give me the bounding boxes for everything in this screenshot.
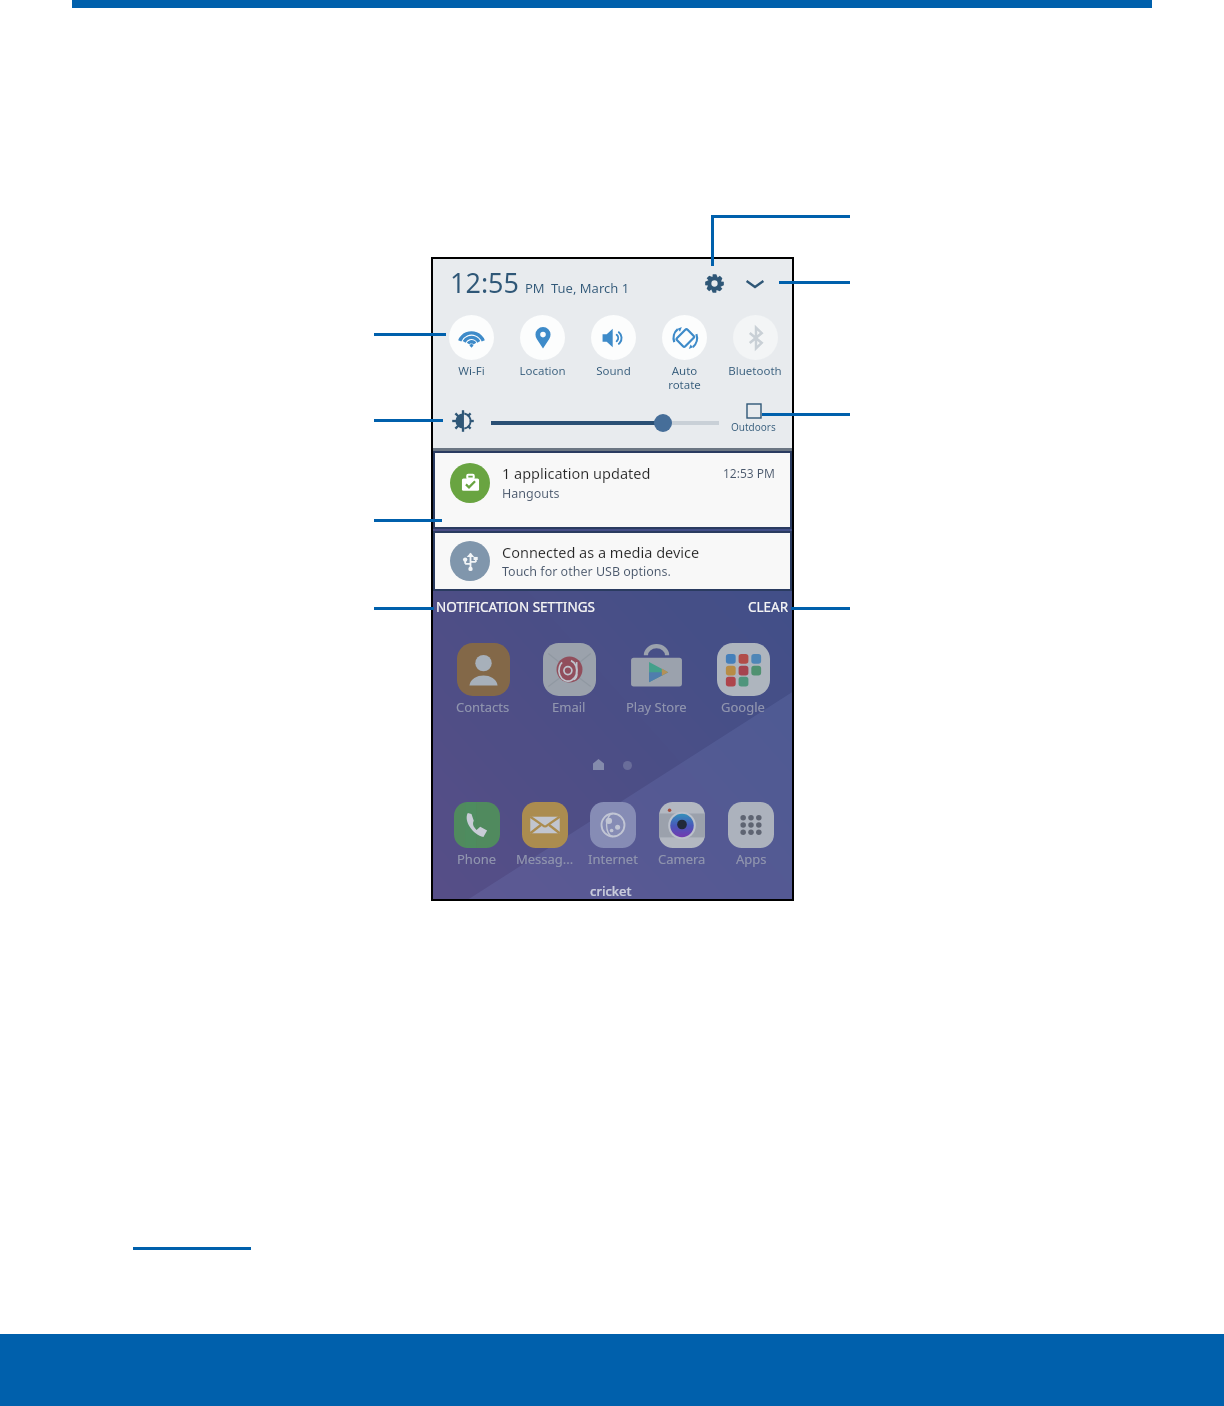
button[interactable]: Contacts (450, 643, 516, 716)
button[interactable]: Wi-Fi (437, 315, 505, 379)
button[interactable]: Email (536, 643, 602, 716)
button[interactable]: Outdoors (730, 404, 777, 434)
button[interactable]: Settings (701, 270, 727, 296)
button[interactable]: Connected as a media device (435, 533, 790, 589)
button[interactable]: Play Store (623, 643, 689, 716)
staticText: Bluetooth (728, 363, 782, 379)
button[interactable]: Sound (579, 315, 647, 379)
button[interactable]: Apps (719, 802, 783, 868)
button[interactable]: CLEAR (748, 598, 789, 616)
staticText: 12:53 PM (723, 465, 775, 481)
button[interactable]: Auto rotate (650, 315, 718, 392)
staticText: cricket (590, 882, 632, 900)
button[interactable]: Bluetooth (721, 315, 789, 379)
staticText: Connected as a media device (502, 542, 700, 562)
staticText: NOTIFICATION SETTINGS (436, 598, 595, 616)
button[interactable]: Expand quick settings (742, 270, 768, 296)
staticText: Apps (736, 850, 767, 868)
button[interactable]: NOTIFICATION SETTINGS (436, 598, 595, 616)
staticText: Hangouts (502, 485, 560, 502)
staticText: CLEAR (748, 598, 789, 616)
staticText: Touch for other USB options. (502, 563, 671, 580)
staticText: Outdoors (731, 420, 776, 434)
button[interactable]: Location (508, 315, 576, 379)
staticText: Sound (596, 363, 631, 379)
staticText: Email (552, 698, 586, 716)
button[interactable]: Phone (445, 802, 509, 868)
button[interactable]: Camera (650, 802, 714, 868)
staticText: 12:55 (450, 264, 520, 301)
staticText: Internet (588, 850, 638, 868)
staticText: Play Store (626, 698, 687, 716)
staticText: Tue, March 1 (551, 279, 630, 297)
button[interactable]: Messag... (513, 802, 577, 868)
staticText: Location (519, 363, 566, 379)
button[interactable]: Internet (581, 802, 645, 868)
staticText: Wi-Fi (458, 363, 485, 379)
staticText: Messag... (516, 850, 574, 868)
staticText: Phone (457, 850, 497, 868)
staticText: 1 application updated (502, 463, 651, 483)
button[interactable]: 1 application updated (435, 453, 790, 527)
staticText: Google (721, 698, 765, 716)
staticText: Contacts (456, 698, 510, 716)
button[interactable]: Google (710, 643, 776, 716)
staticText: Auto rotate (668, 363, 701, 392)
staticText: Camera (658, 850, 706, 868)
staticText: PM (525, 279, 545, 297)
